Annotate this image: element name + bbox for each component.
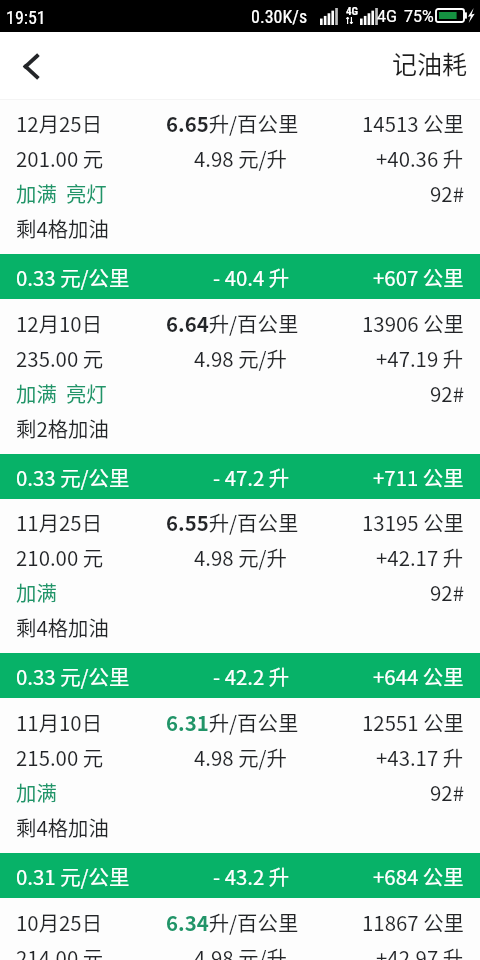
staticText: 14513 公里 — [362, 108, 464, 138]
staticText: 剩4格加油 — [16, 612, 109, 642]
staticText: 92# — [430, 777, 464, 807]
staticText: 215.00 元 — [16, 742, 104, 772]
staticText: 12月10日 — [16, 308, 103, 338]
staticText: 11月10日 — [16, 707, 103, 737]
staticText: 13195 公里 — [362, 507, 464, 537]
staticText: 6.34升/百公里 — [166, 907, 299, 937]
staticText: 0.30K/s — [251, 6, 308, 27]
staticText: +47.19 升 — [376, 343, 464, 373]
staticText: 0.33 元/公里 — [16, 262, 130, 292]
staticText: +42.17 升 — [376, 542, 464, 572]
staticText: 剩4格加油 — [16, 812, 109, 842]
staticText: 235.00 元 — [16, 343, 104, 373]
staticText: +607 公里 — [373, 262, 464, 292]
button[interactable]: 11月10日 — [0, 699, 480, 899]
staticText: 6.55升/百公里 — [166, 507, 299, 537]
staticText: +711 公里 — [373, 462, 464, 492]
staticText: 6.31升/百公里 — [166, 707, 299, 737]
staticText: 剩2格加油 — [16, 413, 109, 443]
staticText: 11月25日 — [16, 507, 103, 537]
staticText: 6.64升/百公里 — [166, 308, 299, 338]
staticText: - 40.4 升 — [213, 262, 290, 292]
staticText: 6.65升/百公里 — [166, 108, 299, 138]
staticText: +644 公里 — [373, 661, 464, 691]
staticText: 75% — [404, 7, 434, 26]
staticText: 4G — [346, 5, 358, 18]
staticText: 4.98 元/升 — [194, 143, 287, 173]
staticText: 加满 亮灯 — [16, 378, 107, 408]
staticText: - 42.2 升 — [213, 661, 290, 691]
button[interactable]: 12月10日 — [0, 300, 480, 500]
staticText: 4G — [377, 7, 397, 26]
staticText: 210.00 元 — [16, 542, 104, 572]
staticText: 0.33 元/公里 — [16, 462, 130, 492]
staticText: +40.36 升 — [376, 143, 464, 173]
button[interactable]: 11月25日 — [0, 499, 480, 699]
staticText: 214.00 元 — [16, 942, 104, 960]
staticText: 加满 亮灯 — [16, 178, 107, 208]
staticText: +43.17 升 — [376, 742, 464, 772]
staticText: 4.98 元/升 — [194, 942, 287, 960]
button[interactable]: 10月25日 — [0, 899, 480, 960]
staticText: +42.97 升 — [376, 942, 464, 960]
staticText: 92# — [430, 178, 464, 208]
staticText: 12551 公里 — [362, 707, 464, 737]
staticText: +684 公里 — [373, 861, 464, 891]
staticText: 加满 — [16, 777, 57, 807]
staticText: 92# — [430, 378, 464, 408]
button[interactable]: 12月25日 — [0, 100, 480, 300]
staticText: 10月25日 — [16, 907, 103, 937]
staticText: 0.33 元/公里 — [16, 661, 130, 691]
staticText: 加满 — [16, 577, 57, 607]
button[interactable]: Back — [6, 40, 56, 92]
staticText: 201.00 元 — [16, 143, 104, 173]
staticText: 4.98 元/升 — [194, 343, 287, 373]
staticText: 4.98 元/升 — [194, 742, 287, 772]
staticText: 92# — [430, 577, 464, 607]
staticText: 剩4格加油 — [16, 213, 109, 243]
staticText: 4.98 元/升 — [194, 542, 287, 572]
staticText: 记油耗 — [392, 45, 468, 81]
staticText: - 43.2 升 — [213, 861, 290, 891]
staticText: 12月25日 — [16, 108, 103, 138]
staticText: 13906 公里 — [362, 308, 464, 338]
staticText: 19:51 — [6, 7, 46, 28]
staticText: 11867 公里 — [362, 907, 464, 937]
staticText: 0.31 元/公里 — [16, 861, 130, 891]
staticText: - 47.2 升 — [213, 462, 290, 492]
